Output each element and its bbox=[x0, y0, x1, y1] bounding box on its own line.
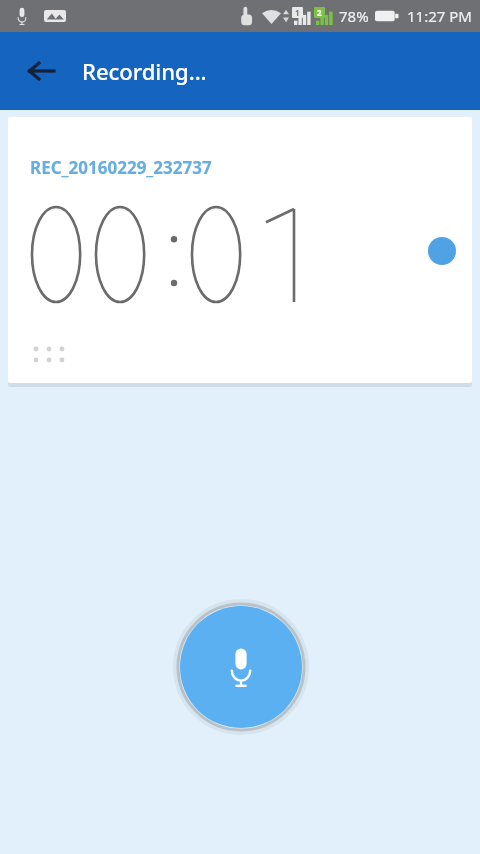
staticText: Recording... bbox=[82, 56, 207, 86]
button[interactable]: Stop recording bbox=[174, 600, 308, 734]
staticText: 11:27 PM bbox=[407, 6, 472, 26]
button[interactable]: Back bbox=[16, 46, 66, 96]
staticText: 1 bbox=[295, 7, 300, 18]
staticText: REC_20160229_232737 bbox=[30, 156, 212, 179]
staticText: 78% bbox=[339, 6, 369, 26]
button[interactable]: REC_20160229_232737 bbox=[8, 117, 472, 383]
staticText: 2 bbox=[317, 7, 322, 18]
